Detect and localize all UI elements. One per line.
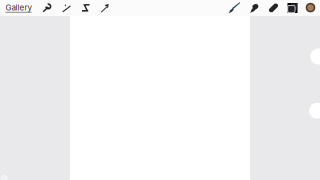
button[interactable]: Adjustments bbox=[57, 0, 75, 16]
button[interactable]: Selection bbox=[77, 0, 95, 16]
button[interactable]: Colour bbox=[301, 0, 319, 16]
staticText: Gallery bbox=[5, 3, 31, 12]
button[interactable]: Paint bbox=[225, 0, 243, 16]
button[interactable]: Brush opacity bbox=[309, 103, 320, 119]
button[interactable]: Brush size bbox=[310, 48, 320, 64]
button[interactable]: Actions bbox=[38, 0, 56, 16]
button[interactable]: Smudge bbox=[245, 0, 263, 16]
button[interactable]: Transform bbox=[96, 0, 114, 16]
button[interactable]: Layers bbox=[283, 0, 301, 16]
button[interactable]: Gallery bbox=[3, 0, 33, 16]
button[interactable]: Erase bbox=[264, 0, 282, 16]
